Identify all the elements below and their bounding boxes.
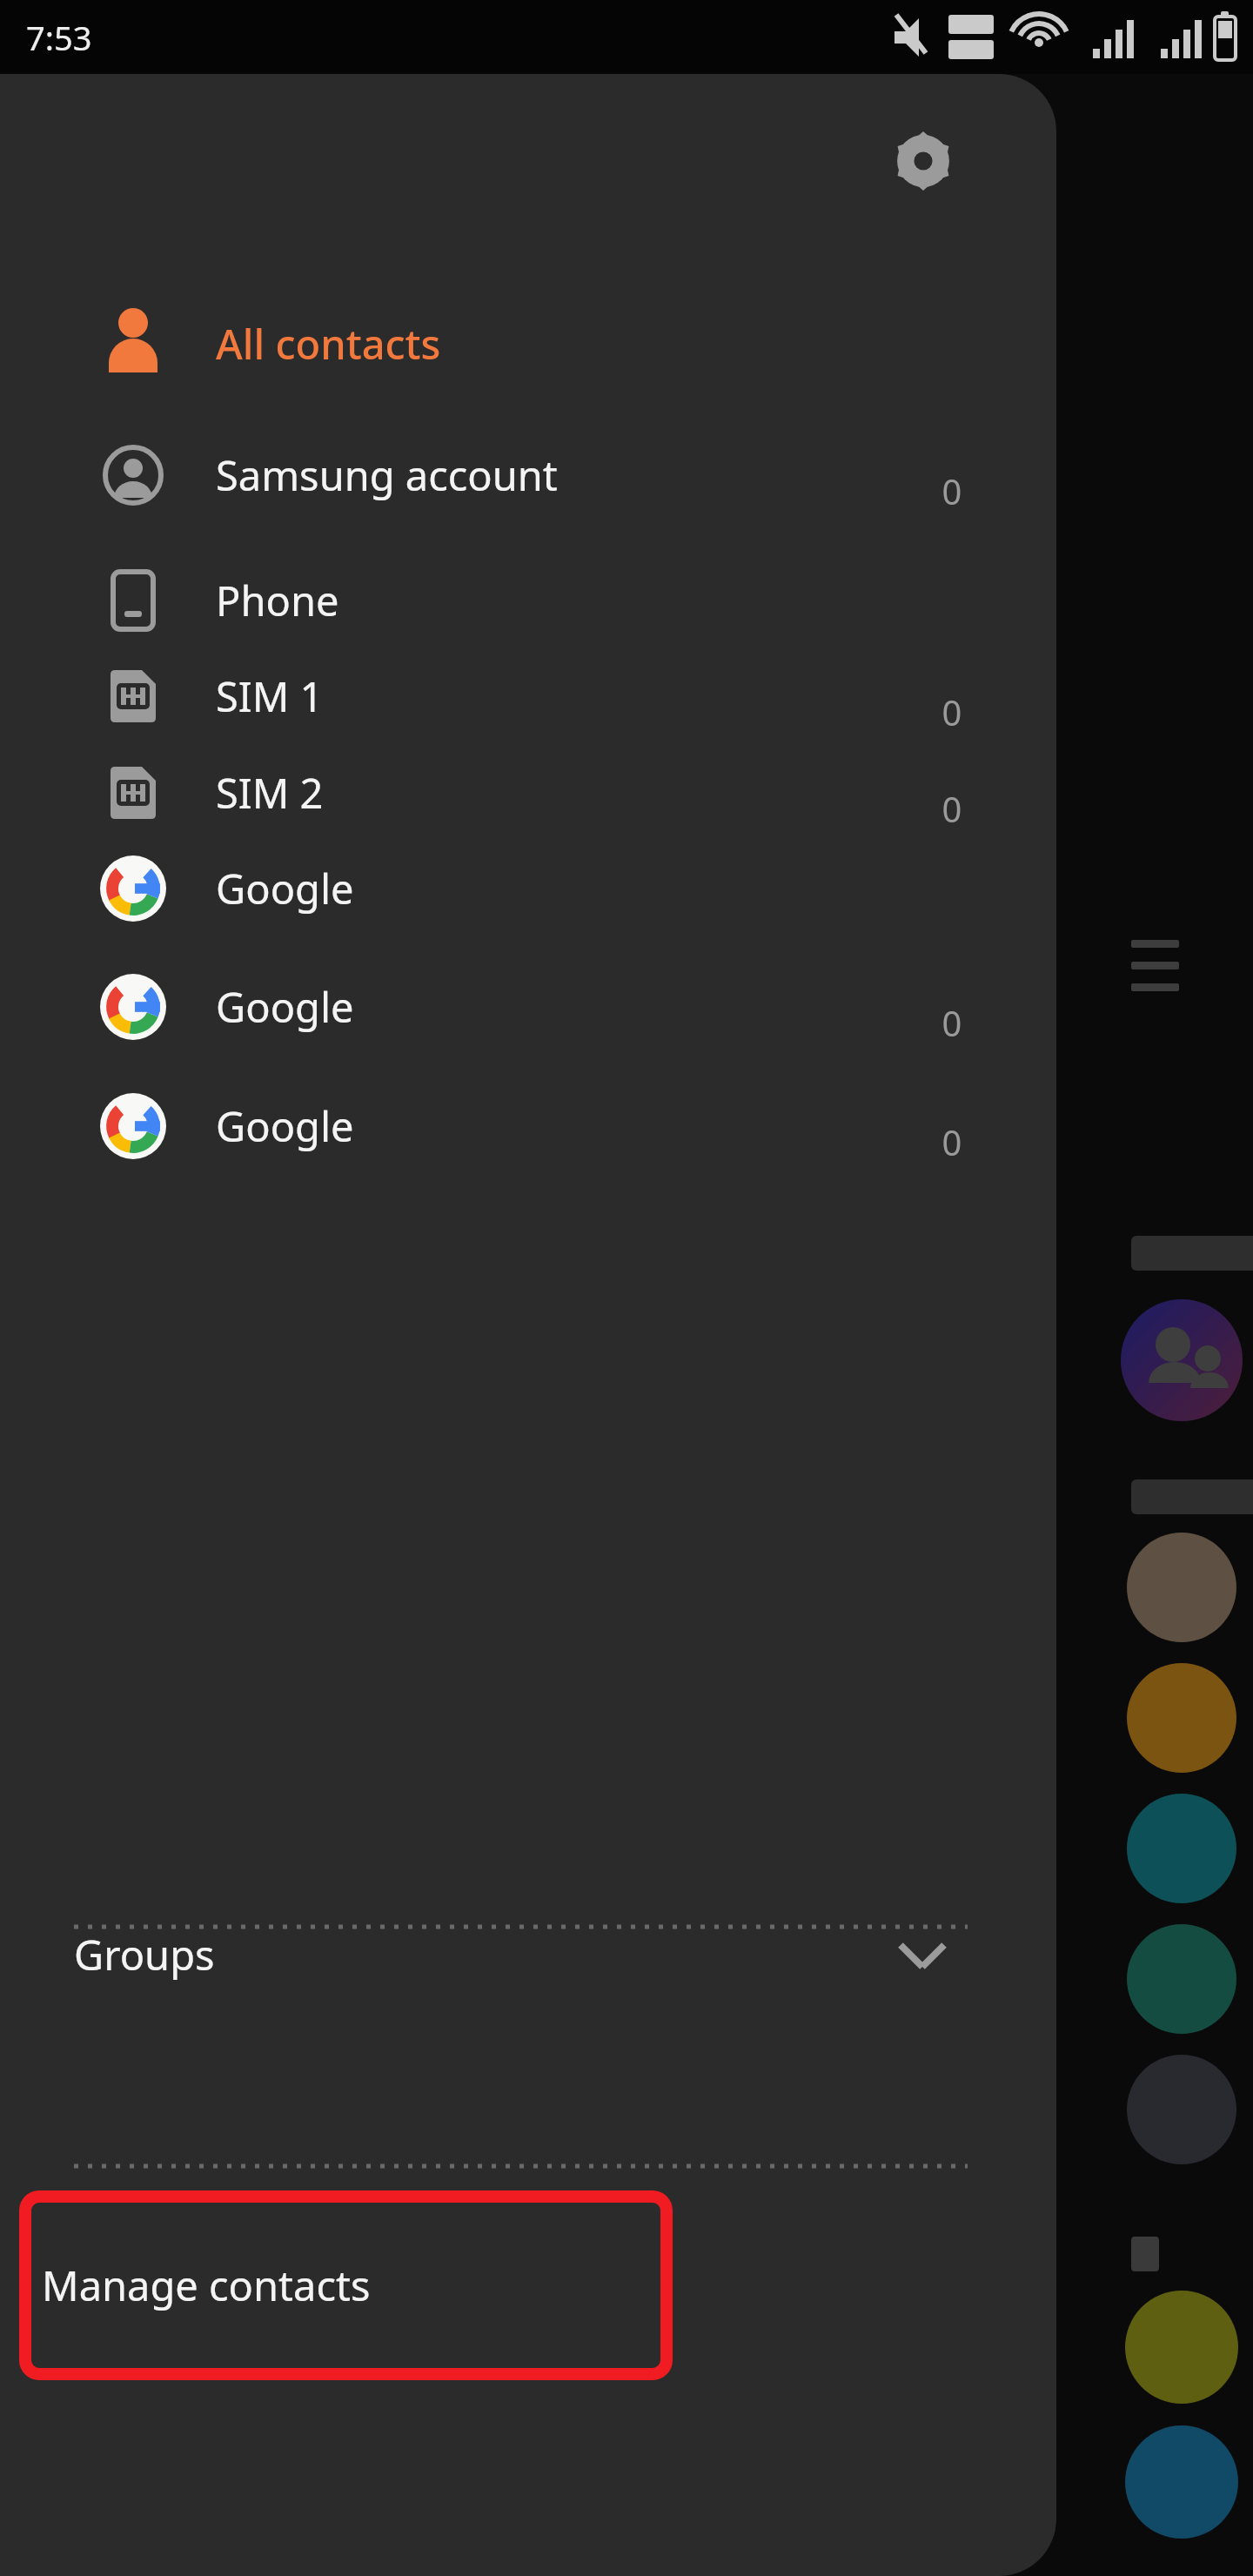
staticText: 0 bbox=[900, 688, 1004, 735]
button[interactable]: Settings bbox=[881, 119, 965, 203]
button[interactable]: Google bbox=[0, 1078, 1056, 1174]
button[interactable]: Groups bbox=[0, 1881, 1056, 2029]
button[interactable]: SIM 1 bbox=[0, 648, 1056, 744]
button[interactable]: Google bbox=[0, 841, 1056, 936]
staticText: Google bbox=[216, 979, 354, 1035]
staticText: 0 bbox=[900, 1118, 1004, 1165]
staticText: Manage contacts bbox=[42, 2257, 371, 2313]
button[interactable]: Samsung account bbox=[0, 427, 1056, 523]
staticText: Google bbox=[216, 1098, 354, 1154]
staticText: 0 bbox=[900, 467, 1004, 514]
staticText: All contacts bbox=[216, 316, 441, 372]
button[interactable]: SIM 2 bbox=[0, 745, 1056, 841]
staticText: 0 bbox=[900, 785, 1004, 832]
staticText: Phone bbox=[216, 573, 339, 628]
staticText: Samsung account bbox=[216, 447, 558, 503]
button[interactable]: Phone bbox=[0, 553, 1056, 648]
staticText: SIM 1 bbox=[216, 668, 324, 724]
staticText: SIM 2 bbox=[216, 765, 324, 821]
button[interactable]: Google bbox=[0, 959, 1056, 1055]
staticText: 7:53 bbox=[26, 15, 92, 60]
staticText: 0 bbox=[900, 999, 1004, 1046]
staticText: Google bbox=[216, 861, 354, 916]
staticText: Groups bbox=[74, 1927, 215, 1982]
button[interactable]: Manage contacts bbox=[19, 2190, 673, 2380]
button[interactable]: All contacts bbox=[0, 296, 1056, 392]
